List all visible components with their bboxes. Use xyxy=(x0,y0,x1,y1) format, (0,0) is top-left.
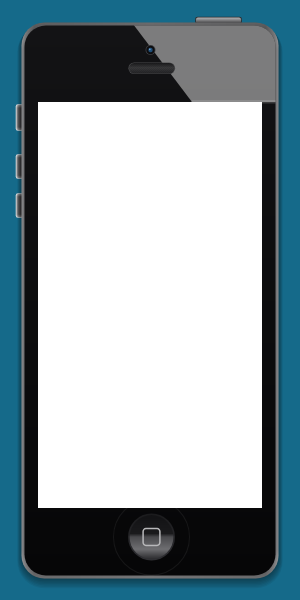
button[interactable]: Smartphone device mockup xyxy=(0,0,300,600)
